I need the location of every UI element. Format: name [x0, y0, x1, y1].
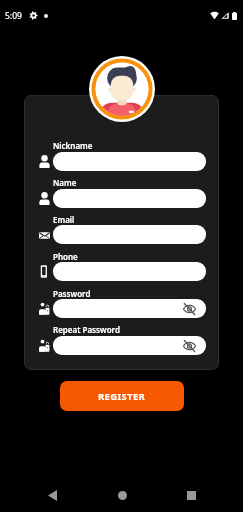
button[interactable]: Toggle password visibility	[183, 339, 196, 352]
staticText: Email	[53, 214, 75, 225]
button[interactable]: REGISTER	[60, 381, 184, 411]
button[interactable]: Recent apps	[174, 478, 208, 512]
staticText: Nickname	[53, 140, 93, 151]
staticText: 5:09	[5, 10, 22, 22]
button[interactable]	[53, 262, 206, 281]
button[interactable]: Profile photo	[89, 56, 155, 122]
staticText: Name	[53, 177, 77, 188]
button[interactable]: Toggle password visibility	[53, 299, 206, 318]
button[interactable]	[53, 152, 206, 171]
button[interactable]	[53, 189, 206, 208]
staticText: Password	[53, 288, 91, 299]
staticText: Repeat Password	[53, 324, 120, 335]
button[interactable]: Toggle password visibility	[53, 336, 206, 355]
button[interactable]: Toggle password visibility	[183, 302, 196, 315]
button[interactable]: Home	[105, 478, 139, 512]
staticText: Phone	[53, 251, 78, 262]
staticText: REGISTER	[98, 390, 146, 403]
button[interactable]: Back	[35, 478, 69, 512]
button[interactable]	[53, 225, 206, 244]
